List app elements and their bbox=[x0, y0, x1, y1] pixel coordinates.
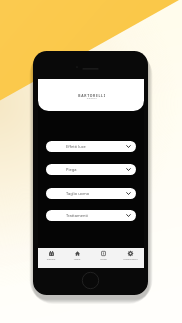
staticText: HOTELS bbox=[39, 97, 144, 100]
other: Home bbox=[75, 251, 80, 256]
button[interactable]: Prenota bbox=[38, 248, 64, 268]
staticText: Piega bbox=[66, 167, 77, 172]
button[interactable]: Effetti luce bbox=[46, 141, 136, 152]
button[interactable]: BARTORELLI bbox=[38, 79, 144, 111]
other: Prenota bbox=[49, 251, 54, 256]
button[interactable]: Impostazioni bbox=[117, 248, 144, 268]
button[interactable]: Piega bbox=[46, 164, 136, 175]
staticText: Prenota bbox=[38, 258, 64, 261]
other: Impostazioni bbox=[128, 251, 133, 256]
staticText: Taglio uomo bbox=[66, 191, 90, 196]
button[interactable]: Scopri bbox=[90, 248, 117, 268]
other: Scopri bbox=[101, 251, 106, 256]
staticText: Trattamenti bbox=[66, 213, 88, 218]
staticText: Effetti luce bbox=[66, 144, 86, 149]
button[interactable]: Taglio uomo bbox=[46, 188, 136, 199]
button[interactable]: Home bbox=[64, 248, 90, 268]
staticText: BARTORELLI bbox=[39, 93, 144, 98]
staticText: Home bbox=[64, 258, 90, 261]
staticText: Impostazioni bbox=[117, 258, 144, 261]
staticText: Scopri bbox=[90, 258, 117, 261]
button[interactable]: Trattamenti bbox=[46, 210, 136, 221]
